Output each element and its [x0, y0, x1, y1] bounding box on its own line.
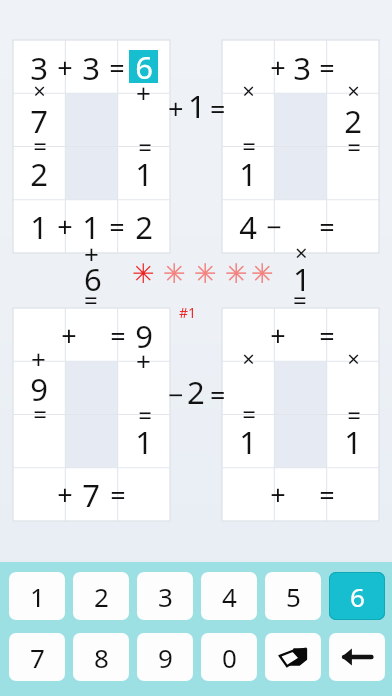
staticText: ✳	[163, 258, 186, 289]
staticText: =	[110, 317, 126, 354]
staticText: ×	[242, 343, 255, 373]
staticText: 4	[222, 579, 237, 614]
staticText: −	[168, 376, 184, 413]
staticText: 6	[135, 46, 153, 88]
staticText: 8	[94, 640, 109, 675]
staticText: 3	[30, 47, 48, 89]
staticText: +	[136, 75, 151, 110]
staticText: ✳	[132, 258, 155, 289]
staticText: ×	[347, 343, 360, 373]
button[interactable]: 9	[137, 633, 193, 681]
staticText: 4	[239, 206, 257, 248]
button[interactable]: Backspace	[329, 633, 385, 681]
staticText: =	[138, 130, 152, 163]
staticText: ×	[347, 75, 360, 105]
staticText: +	[168, 90, 184, 127]
staticText: +	[84, 236, 99, 271]
staticText: 9	[135, 315, 153, 357]
staticText: =	[84, 283, 98, 316]
staticText: +	[270, 317, 286, 354]
staticText: =	[33, 397, 47, 430]
staticText: ×	[33, 75, 46, 105]
staticText: 6	[84, 258, 102, 300]
staticText: =	[210, 90, 226, 127]
button[interactable]: 3	[137, 572, 193, 620]
staticText: =	[319, 208, 335, 245]
staticText: 2	[135, 206, 153, 248]
staticText: +	[31, 341, 46, 376]
staticText: 5	[286, 579, 301, 614]
staticText: =	[242, 129, 256, 162]
staticText: =	[138, 398, 152, 431]
button[interactable]: 7	[9, 633, 65, 681]
staticText: #1	[179, 303, 197, 322]
staticText: ✳	[251, 258, 274, 289]
staticText: =	[110, 476, 126, 513]
staticText: 2	[94, 579, 109, 614]
staticText: +	[57, 208, 73, 245]
staticText: 9	[158, 640, 173, 675]
staticText: ×	[295, 237, 308, 267]
staticText: 2	[187, 371, 205, 413]
staticText: =	[319, 317, 335, 354]
button[interactable]: 6	[329, 572, 385, 620]
staticText: −	[266, 208, 282, 245]
button[interactable]: Erase	[265, 633, 321, 681]
staticText: 7	[30, 640, 45, 675]
staticText: 1	[239, 421, 257, 463]
staticText: ✳	[194, 258, 217, 289]
button[interactable]: 2	[73, 572, 129, 620]
staticText: =	[293, 283, 307, 316]
staticText: 1	[239, 153, 257, 195]
staticText: =	[242, 397, 256, 430]
staticText: =	[109, 208, 125, 245]
staticText: 3	[82, 47, 100, 89]
staticText: 1	[135, 421, 153, 463]
staticText: 1	[344, 421, 362, 463]
button[interactable]: 5	[265, 572, 321, 620]
staticText: =	[210, 376, 226, 413]
staticText: ×	[242, 75, 255, 105]
staticText: 7	[82, 474, 100, 516]
staticText: 9	[30, 368, 48, 410]
staticText: =	[347, 130, 361, 163]
button[interactable]: 8	[73, 633, 129, 681]
staticText: =	[347, 398, 361, 431]
button[interactable]: 1	[9, 572, 65, 620]
staticText: =	[33, 129, 47, 162]
staticText: =	[319, 49, 335, 86]
staticText: =	[319, 476, 335, 513]
staticText: 3	[293, 47, 311, 89]
staticText: 1	[188, 85, 206, 127]
staticText: +	[270, 49, 286, 86]
staticText: 1	[30, 579, 45, 614]
staticText: =	[109, 49, 125, 86]
staticText: +	[57, 476, 73, 513]
staticText: 6	[350, 579, 365, 614]
staticText: ✳	[225, 258, 248, 289]
staticText: +	[61, 317, 77, 354]
staticText: 1	[30, 206, 48, 248]
staticText: +	[57, 49, 73, 86]
button[interactable]: 0	[201, 633, 257, 681]
staticText: +	[136, 343, 151, 378]
staticText: 2	[30, 153, 48, 195]
staticText: 1	[82, 206, 100, 248]
staticText: +	[270, 476, 286, 513]
staticText: 1	[293, 258, 311, 300]
staticText: 3	[158, 579, 173, 614]
staticText: 2	[344, 100, 362, 142]
button[interactable]: 4	[201, 572, 257, 620]
staticText: 0	[222, 640, 237, 675]
staticText: 1	[135, 153, 153, 195]
staticText: 7	[30, 100, 48, 142]
